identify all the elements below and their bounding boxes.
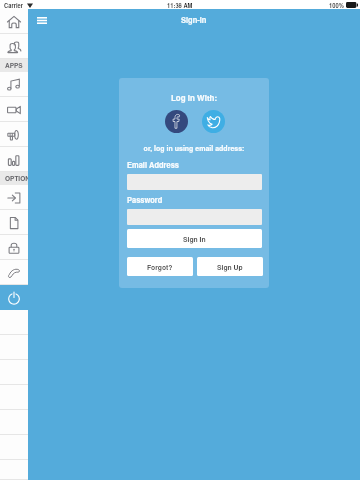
button[interactable]: Privacy	[0, 235, 28, 260]
staticText: APPS	[5, 61, 23, 70]
button[interactable]: Power	[0, 285, 28, 310]
staticText: Log in With:	[119, 92, 269, 103]
button[interactable]: Sign Up	[197, 257, 263, 276]
staticText: Carrier	[4, 1, 24, 9]
button[interactable]: Sign in	[0, 185, 28, 210]
staticText: Password	[127, 195, 163, 206]
staticText: Email Address	[127, 160, 180, 171]
button[interactable]: Forgot?	[127, 257, 193, 276]
staticText: Sign-in	[181, 15, 207, 26]
button[interactable]: Statistics	[0, 147, 28, 172]
staticText: Sign In	[183, 234, 206, 244]
button[interactable]: Open navigation menu	[33, 11, 51, 29]
staticText: 11:38 AM	[167, 1, 193, 9]
button[interactable]: Contact us	[0, 260, 28, 285]
button[interactable]: Sign In	[127, 229, 262, 248]
button[interactable]: Documents	[0, 210, 28, 235]
staticText: 100%	[329, 1, 344, 9]
button[interactable]: Contacts	[0, 34, 28, 59]
staticText: Forgot?	[147, 262, 173, 272]
button[interactable]: Log in with Twitter	[202, 110, 225, 133]
staticText: Sign Up	[217, 262, 243, 272]
button[interactable]: Announcements	[0, 122, 28, 147]
button[interactable]: Home	[0, 9, 28, 34]
button[interactable]: Music	[0, 72, 28, 97]
button[interactable]: Video	[0, 97, 28, 122]
staticText: OPTIONS	[5, 174, 28, 183]
button[interactable]: Log in with Facebook	[165, 110, 188, 133]
staticText: or, log in using email address:	[119, 143, 269, 153]
